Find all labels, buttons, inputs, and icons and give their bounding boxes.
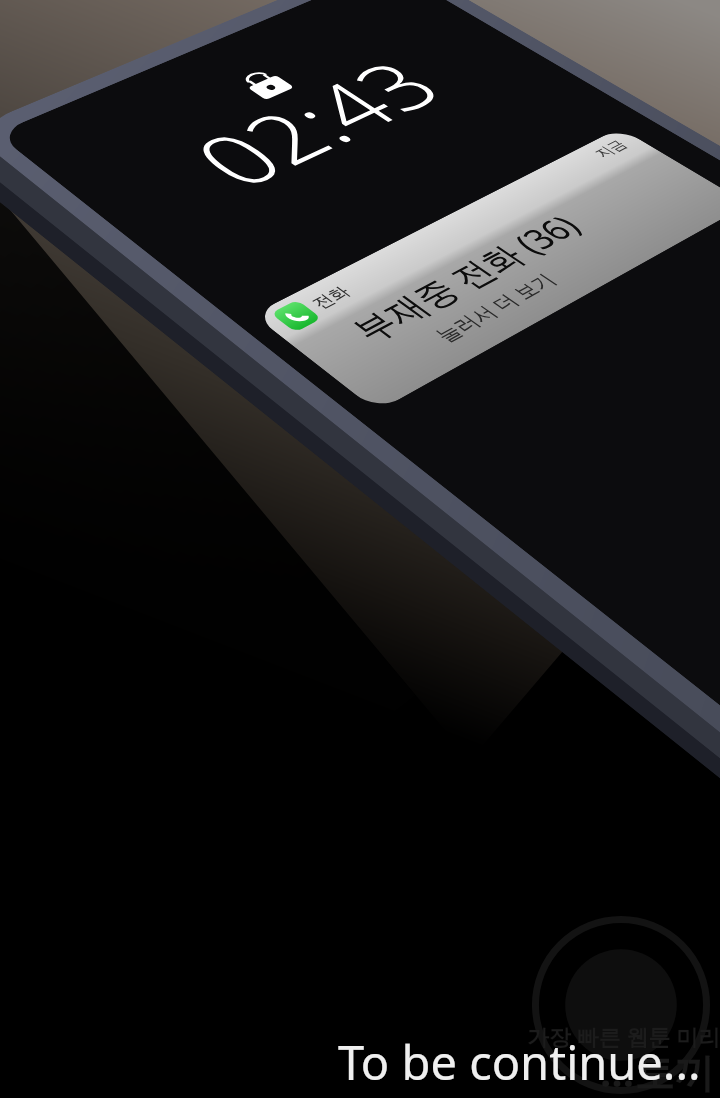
staticText: 가장 빠른 웹툰 미리보기 bbox=[527, 1021, 720, 1051]
staticText: 부재중 전화 (36) bbox=[338, 207, 592, 349]
staticText: 02:43 bbox=[162, 43, 471, 207]
staticText: …토끼 bbox=[600, 1044, 715, 1098]
button[interactable]: 전화 bbox=[253, 128, 720, 412]
staticText: 전화 bbox=[307, 283, 356, 313]
staticText: To be continue... bbox=[338, 1030, 701, 1094]
staticText: 지금 bbox=[590, 137, 632, 161]
staticText: 눌러서 더 보기 bbox=[426, 268, 563, 346]
